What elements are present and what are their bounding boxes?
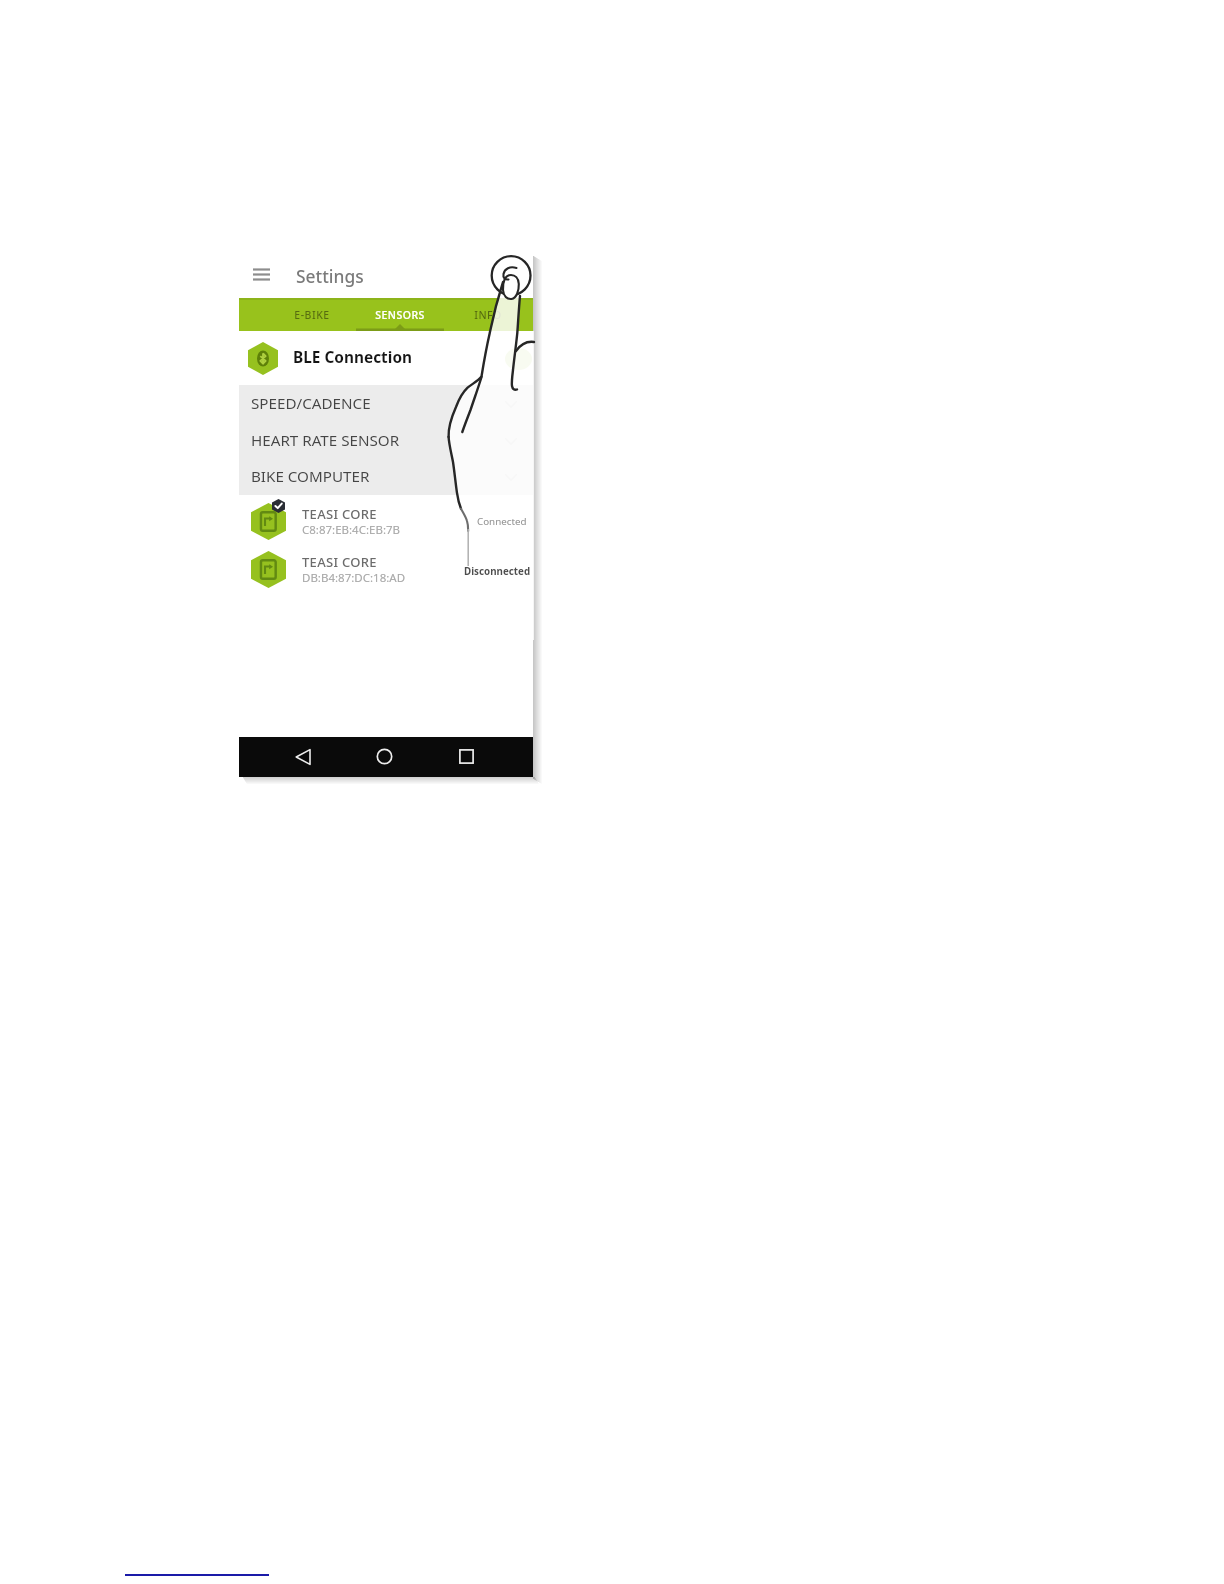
staticText: C8:87:EB:4C:EB:7B (302, 522, 401, 538)
button[interactable]: INFO (444, 298, 532, 331)
staticText: TEASI CORE (302, 553, 377, 571)
button[interactable]: Back (293, 746, 314, 767)
button[interactable]: BIKE COMPUTER (239, 458, 533, 495)
button[interactable]: SPEED/CADENCE (239, 385, 533, 422)
button[interactable]: Recents (456, 746, 477, 767)
staticText: TEASI CORE (302, 505, 377, 523)
staticText: SPEED/CADENCE (251, 393, 371, 414)
staticText: DB:B4:87:DC:18:AD (302, 570, 406, 586)
button[interactable]: Home (374, 746, 395, 767)
button[interactable]: BLE Connection (239, 331, 533, 385)
staticText: Settings (296, 264, 364, 288)
button[interactable]: TEASI CORE (239, 551, 533, 599)
staticText: INFO (474, 308, 502, 322)
button[interactable]: Menu (247, 260, 275, 288)
button[interactable]: SENSORS (356, 298, 444, 331)
button[interactable]: TEASI CORE (239, 503, 533, 551)
staticText: HEART RATE SENSOR (251, 430, 400, 451)
staticText: SENSORS (375, 308, 425, 322)
staticText: BLE Connection (293, 347, 413, 368)
button[interactable]: HEART RATE SENSOR (239, 422, 533, 459)
staticText: Disconnected (464, 565, 531, 578)
staticText: E-BIKE (294, 308, 330, 322)
staticText: Connected (477, 515, 527, 528)
staticText: BIKE COMPUTER (251, 466, 370, 487)
button[interactable]: E-BIKE (268, 298, 356, 331)
